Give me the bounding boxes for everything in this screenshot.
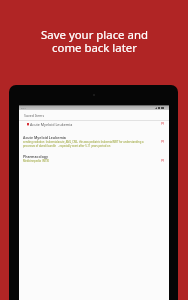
button[interactable]: Saved Items [19, 111, 169, 120]
button[interactable]: Acute Myeloid Leukemia [19, 121, 169, 128]
button[interactable]: Remove from saved items [159, 138, 165, 144]
staticText: Save your place and come back later [41, 27, 148, 56]
staticText: Pharmacology [23, 154, 49, 159]
staticText: Acute Myeloid Leukemia [23, 135, 66, 140]
staticText: processes of alveoli bundle - especially… [23, 144, 111, 148]
staticText: Medicinepedia (MTX) [23, 159, 50, 163]
button[interactable]: Remove from saved items [159, 120, 165, 126]
staticText: Saved Items [24, 113, 45, 118]
button[interactable]: Remove from saved items [159, 157, 165, 163]
staticText: 9:41 [21, 106, 26, 109]
staticText: Acute Myeloid Leukemia [30, 122, 73, 127]
staticText: sending radiation leukemia/acute_AML_CML… [23, 140, 144, 144]
